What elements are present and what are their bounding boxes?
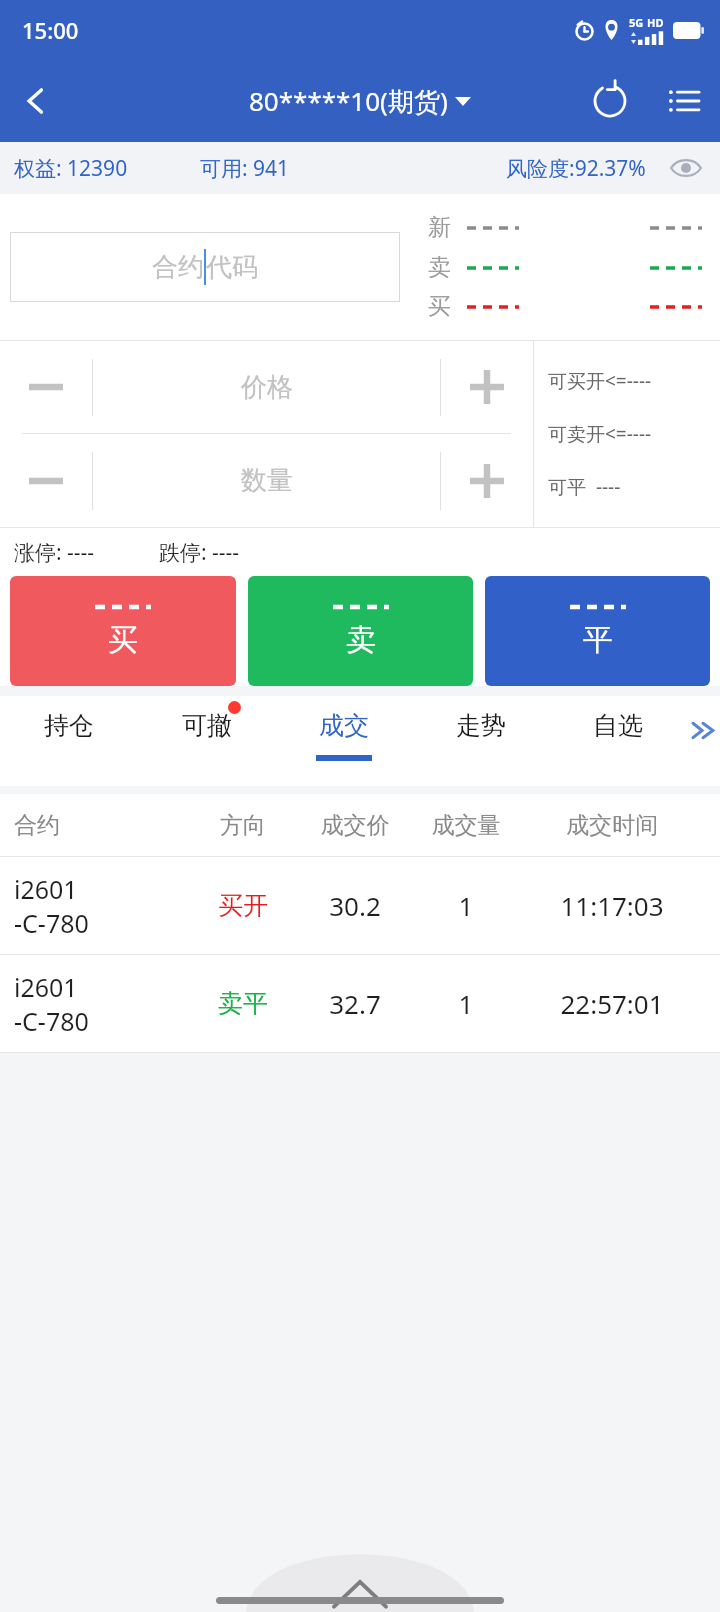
staticText: 数量: [241, 464, 293, 497]
staticText: 80*****10(期货): [249, 83, 448, 119]
staticText: 1: [414, 888, 518, 923]
staticText: 卖: [428, 253, 451, 282]
button[interactable]: 平: [485, 576, 710, 686]
staticText: 可用: 941: [200, 154, 290, 183]
staticText: 成交量: [414, 811, 518, 840]
staticText: 自选: [593, 710, 643, 741]
button[interactable]: Increase 价格: [441, 341, 533, 433]
staticText: -C-780: [14, 1004, 89, 1038]
button[interactable]: i2601: [0, 857, 720, 954]
staticText: 1: [414, 986, 518, 1021]
staticText: 平: [583, 621, 613, 659]
staticText: 合约: [152, 251, 204, 284]
staticText: 5G: [629, 15, 644, 30]
button[interactable]: Decrease 价格: [0, 341, 92, 433]
staticText: i2601: [14, 970, 78, 1004]
staticText: 代码: [206, 251, 258, 284]
staticText: 15:00: [22, 15, 79, 45]
staticText: 成交时间: [518, 811, 706, 840]
button[interactable]: Expand panel: [246, 1530, 474, 1612]
staticText: 风险度:92.37%: [506, 154, 646, 183]
button[interactable]: Refresh: [572, 60, 648, 142]
button[interactable]: Decrease 数量: [0, 434, 92, 527]
button[interactable]: Increase 数量: [441, 434, 533, 527]
staticText: 新: [428, 213, 451, 242]
staticText: -C-780: [14, 906, 89, 940]
button[interactable]: Menu: [648, 60, 720, 142]
staticText: 价格: [241, 371, 293, 404]
staticText: 30.2: [296, 888, 414, 923]
staticText: 可卖开<=----: [548, 421, 652, 447]
staticText: 32.7: [296, 986, 414, 1021]
staticText: 22:57:01: [518, 986, 706, 1021]
staticText: 成交: [319, 710, 369, 741]
button[interactable]: 卖: [248, 576, 473, 686]
staticText: 合约: [14, 811, 190, 840]
staticText: 卖: [346, 621, 376, 659]
staticText: i2601: [14, 872, 78, 906]
staticText: 走势: [456, 710, 506, 741]
staticText: 可撤: [182, 710, 232, 741]
button[interactable]: 买: [10, 576, 236, 686]
button[interactable]: 价格: [93, 341, 440, 433]
button[interactable]: 自选: [549, 696, 686, 786]
button[interactable]: 持仓: [0, 696, 138, 786]
button[interactable]: 合约: [10, 232, 400, 302]
staticText: 持仓: [44, 710, 94, 741]
staticText: 可买开<=----: [548, 368, 652, 394]
button[interactable]: 80*****10(期货): [249, 83, 471, 119]
staticText: 买: [108, 621, 138, 659]
staticText: 买开: [190, 890, 296, 921]
button[interactable]: More tabs: [686, 696, 720, 786]
button[interactable]: Back: [0, 60, 72, 142]
staticText: 成交价: [296, 811, 414, 840]
staticText: 买: [428, 292, 451, 321]
button[interactable]: Toggle visibility: [666, 148, 706, 188]
button[interactable]: 数量: [93, 434, 440, 527]
staticText: 11:17:03: [518, 888, 706, 923]
button[interactable]: 成交: [275, 696, 412, 786]
button[interactable]: 走势: [412, 696, 549, 786]
staticText: 权益: 12390: [14, 154, 128, 183]
staticText: 卖平: [190, 988, 296, 1019]
staticText: 涨停: ----: [14, 538, 95, 567]
staticText: HD: [647, 15, 664, 30]
staticText: 跌停: ----: [159, 538, 240, 567]
staticText: 可平 ----: [548, 474, 621, 500]
button[interactable]: 可撤: [138, 696, 275, 786]
button[interactable]: i2601: [0, 955, 720, 1052]
staticText: 方向: [190, 811, 296, 840]
